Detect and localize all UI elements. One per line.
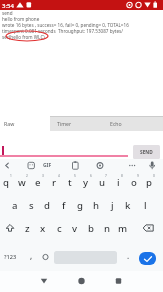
staticText: c [57, 222, 62, 235]
staticText: j [111, 199, 114, 212]
staticText: 3 [42, 174, 44, 178]
staticText: u [99, 176, 106, 189]
staticText: Timer [57, 120, 72, 127]
staticText: n [104, 222, 111, 235]
staticText: 9 [137, 174, 139, 178]
button[interactable]: p [141, 176, 157, 189]
staticText: hello from phone [2, 16, 40, 22]
staticText: 3:54 [2, 2, 14, 10]
button[interactable]: b [83, 222, 99, 235]
staticText: GIF [43, 162, 52, 169]
button[interactable]: y [78, 176, 94, 189]
staticText: d [44, 199, 50, 212]
staticText: q [3, 176, 9, 189]
staticText: b [88, 222, 94, 235]
button[interactable]: c [51, 222, 67, 235]
staticText: l [144, 199, 147, 212]
staticText: send [2, 10, 13, 16]
staticText: r [52, 176, 57, 189]
staticText: 2 [26, 174, 28, 178]
staticText: timespent 0.081 seconds Throughput: 197.… [2, 28, 123, 34]
button[interactable]: z [19, 222, 35, 235]
button[interactable]: k [120, 199, 136, 212]
button[interactable]: n [99, 222, 115, 235]
staticText: f [62, 199, 66, 212]
button[interactable]: m [115, 222, 131, 235]
staticText: m [118, 222, 128, 235]
button[interactable]: h [88, 199, 104, 212]
button[interactable]: r [46, 176, 62, 189]
staticText: s [29, 199, 34, 212]
button[interactable]: Echo [103, 116, 163, 131]
button[interactable]: Raw [0, 116, 50, 131]
button[interactable]: o [126, 176, 142, 189]
staticText: SEND [140, 149, 153, 156]
button[interactable] [55, 271, 109, 292]
staticText: a [12, 199, 18, 212]
staticText: z [25, 222, 30, 235]
button[interactable]: x [35, 222, 51, 235]
button[interactable]: w [14, 176, 30, 189]
button[interactable]: GIF [41, 161, 54, 170]
staticText: Echo [110, 120, 122, 127]
button[interactable]: j [104, 199, 120, 212]
button[interactable] [109, 271, 163, 292]
staticText: k [125, 199, 131, 212]
staticText: t [68, 176, 72, 189]
staticText: . [127, 250, 130, 261]
staticText: 0 [153, 174, 155, 178]
staticText: ?123 [4, 253, 17, 261]
button[interactable]: t [62, 176, 78, 189]
button[interactable] [139, 252, 156, 265]
staticText: p [146, 176, 152, 189]
button[interactable] [0, 271, 55, 292]
staticText: w [18, 176, 26, 189]
button[interactable]: f [56, 199, 72, 212]
staticText: e [35, 176, 41, 189]
button[interactable]: e [30, 176, 46, 189]
button[interactable]: i [110, 176, 126, 189]
button[interactable]: ?123 [2, 252, 19, 262]
staticText: sec(hello from WLC) [2, 34, 45, 40]
staticText: h [93, 199, 100, 212]
button[interactable]: g [72, 199, 88, 212]
staticText: 7 [105, 174, 107, 178]
staticText: g [77, 199, 83, 212]
staticText: x [40, 222, 46, 235]
staticText: 1 [10, 174, 12, 178]
button[interactable]: q [0, 176, 14, 189]
staticText: 6 [90, 174, 92, 178]
staticText: o [131, 176, 137, 189]
staticText: 8 [121, 174, 123, 178]
staticText: v [72, 222, 78, 235]
staticText: 4 [58, 174, 60, 178]
button[interactable]: SEND [133, 145, 160, 159]
button[interactable]: Timer [50, 116, 103, 131]
staticText: wrote 16 bytes , success= 16, fail= 0, p… [2, 22, 129, 28]
button[interactable]: v [67, 222, 83, 235]
button[interactable]: a [7, 199, 23, 212]
button[interactable]: l [137, 199, 153, 212]
staticText: y [83, 176, 89, 189]
staticText: i [117, 176, 120, 189]
button[interactable]: . [120, 249, 136, 262]
staticText: , [30, 250, 33, 261]
button[interactable]: u [94, 176, 110, 189]
staticText: 5 [74, 174, 76, 178]
button[interactable]: , [23, 249, 39, 262]
staticText: Raw [4, 120, 15, 127]
button[interactable]: d [39, 199, 55, 212]
button[interactable]: s [23, 199, 39, 212]
